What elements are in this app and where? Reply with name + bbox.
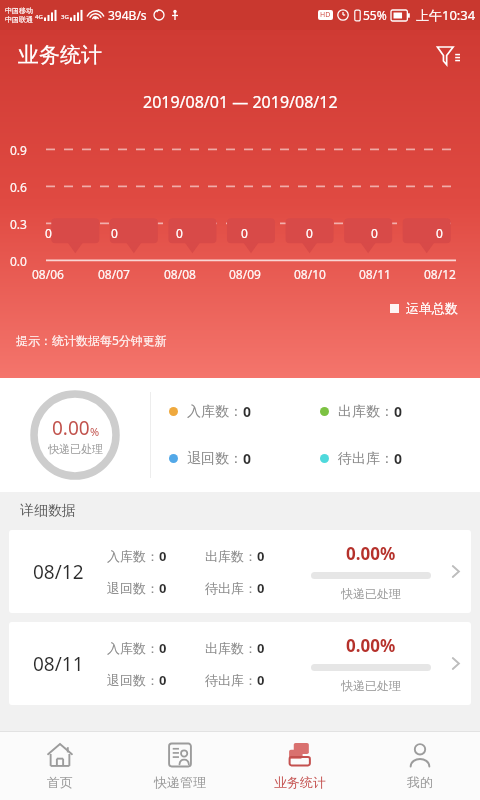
staticText: 08/10 <box>294 266 326 282</box>
staticText: 快递已处理 <box>48 442 103 456</box>
staticText: 首页 <box>47 774 73 790</box>
staticText: 0.6 <box>10 179 27 195</box>
staticText: 0 <box>159 579 167 597</box>
staticText: 运单总数 <box>406 300 458 316</box>
staticText: 08/12 <box>424 266 456 282</box>
staticText: 待出库： <box>205 580 257 596</box>
staticText: 出库数： <box>205 548 257 564</box>
staticText: 出库数： <box>205 640 257 656</box>
staticText: 快递管理 <box>154 774 206 790</box>
staticText: 0 <box>159 547 167 565</box>
button[interactable]: 首页 <box>0 732 120 800</box>
staticText: 0 <box>257 671 265 689</box>
staticText: 0 <box>176 225 183 241</box>
staticText: 0 <box>111 225 118 241</box>
staticText: 55% <box>363 7 387 23</box>
staticText: 0 <box>306 225 313 241</box>
staticText: 0 <box>45 225 52 241</box>
staticText: 0.0 <box>10 253 27 269</box>
staticText: 0 <box>257 639 265 657</box>
staticText: 08/08 <box>164 266 196 282</box>
staticText: 提示：统计数据每5分钟更新 <box>16 332 167 348</box>
staticText: 0 <box>394 402 403 421</box>
staticText: 详细数据 <box>20 502 76 520</box>
staticText: 0 <box>257 579 265 597</box>
staticText: 待出库： <box>338 450 394 468</box>
staticText: 中国联通 <box>5 15 33 24</box>
staticText: 我的 <box>407 774 433 790</box>
staticText: 0.00% <box>346 542 396 565</box>
staticText: 业务统计 <box>18 42 102 68</box>
staticText: 08/11 <box>359 266 391 282</box>
staticText: 上午10:34 <box>416 6 476 24</box>
staticText: 08/09 <box>229 266 261 282</box>
staticText: 0 <box>394 449 403 468</box>
staticText: 0 <box>436 225 443 241</box>
staticText: 退回数： <box>107 580 159 596</box>
button[interactable]: 运单总数 <box>390 300 458 316</box>
button[interactable]: Filter <box>430 37 466 73</box>
button[interactable]: 入库数： <box>169 402 320 421</box>
staticText: % <box>90 424 100 439</box>
staticText: 0 <box>371 225 378 241</box>
staticText: 0.00 <box>52 415 90 441</box>
button[interactable]: 0.00 <box>0 378 150 492</box>
staticText: 待出库： <box>205 672 257 688</box>
staticText: 退回数： <box>187 450 243 468</box>
button[interactable]: 业务统计 <box>240 732 360 800</box>
staticText: 08/07 <box>98 266 130 282</box>
button[interactable]: 08/11 <box>9 622 471 705</box>
staticText: 0 <box>243 402 252 421</box>
staticText: 0 <box>159 639 167 657</box>
button[interactable]: 08/12 <box>9 530 471 613</box>
staticText: HD <box>320 10 331 20</box>
staticText: 08/06 <box>32 266 64 282</box>
staticText: 394B/s <box>108 7 147 23</box>
staticText: 0 <box>241 225 248 241</box>
staticText: 业务统计 <box>274 774 326 790</box>
staticText: 快递已处理 <box>341 678 401 693</box>
button[interactable]: 待出库： <box>320 449 472 468</box>
staticText: 入库数： <box>187 403 243 421</box>
staticText: 0 <box>243 449 252 468</box>
staticText: 中国移动 <box>5 6 33 15</box>
staticText: 2019/08/01 — 2019/08/12 <box>143 91 338 113</box>
staticText: 3G <box>61 13 69 21</box>
staticText: 退回数： <box>107 672 159 688</box>
button[interactable]: 快递管理 <box>120 732 240 800</box>
button[interactable]: 出库数： <box>320 402 472 421</box>
button[interactable]: 退回数： <box>169 449 320 468</box>
staticText: 08/12 <box>33 559 84 585</box>
staticText: 入库数： <box>107 640 159 656</box>
staticText: 4G <box>35 13 43 21</box>
staticText: 快递已处理 <box>341 586 401 601</box>
staticText: 0.3 <box>10 216 27 232</box>
button[interactable]: 我的 <box>360 732 480 800</box>
staticText: 0.9 <box>10 142 27 158</box>
staticText: 出库数： <box>338 403 394 421</box>
staticText: 08/11 <box>33 651 84 677</box>
button[interactable]: 2019/08/01 — 2019/08/12 <box>0 80 480 124</box>
staticText: 0 <box>257 547 265 565</box>
staticText: 入库数： <box>107 548 159 564</box>
staticText: 0.00% <box>346 634 396 657</box>
staticText: 0 <box>159 671 167 689</box>
